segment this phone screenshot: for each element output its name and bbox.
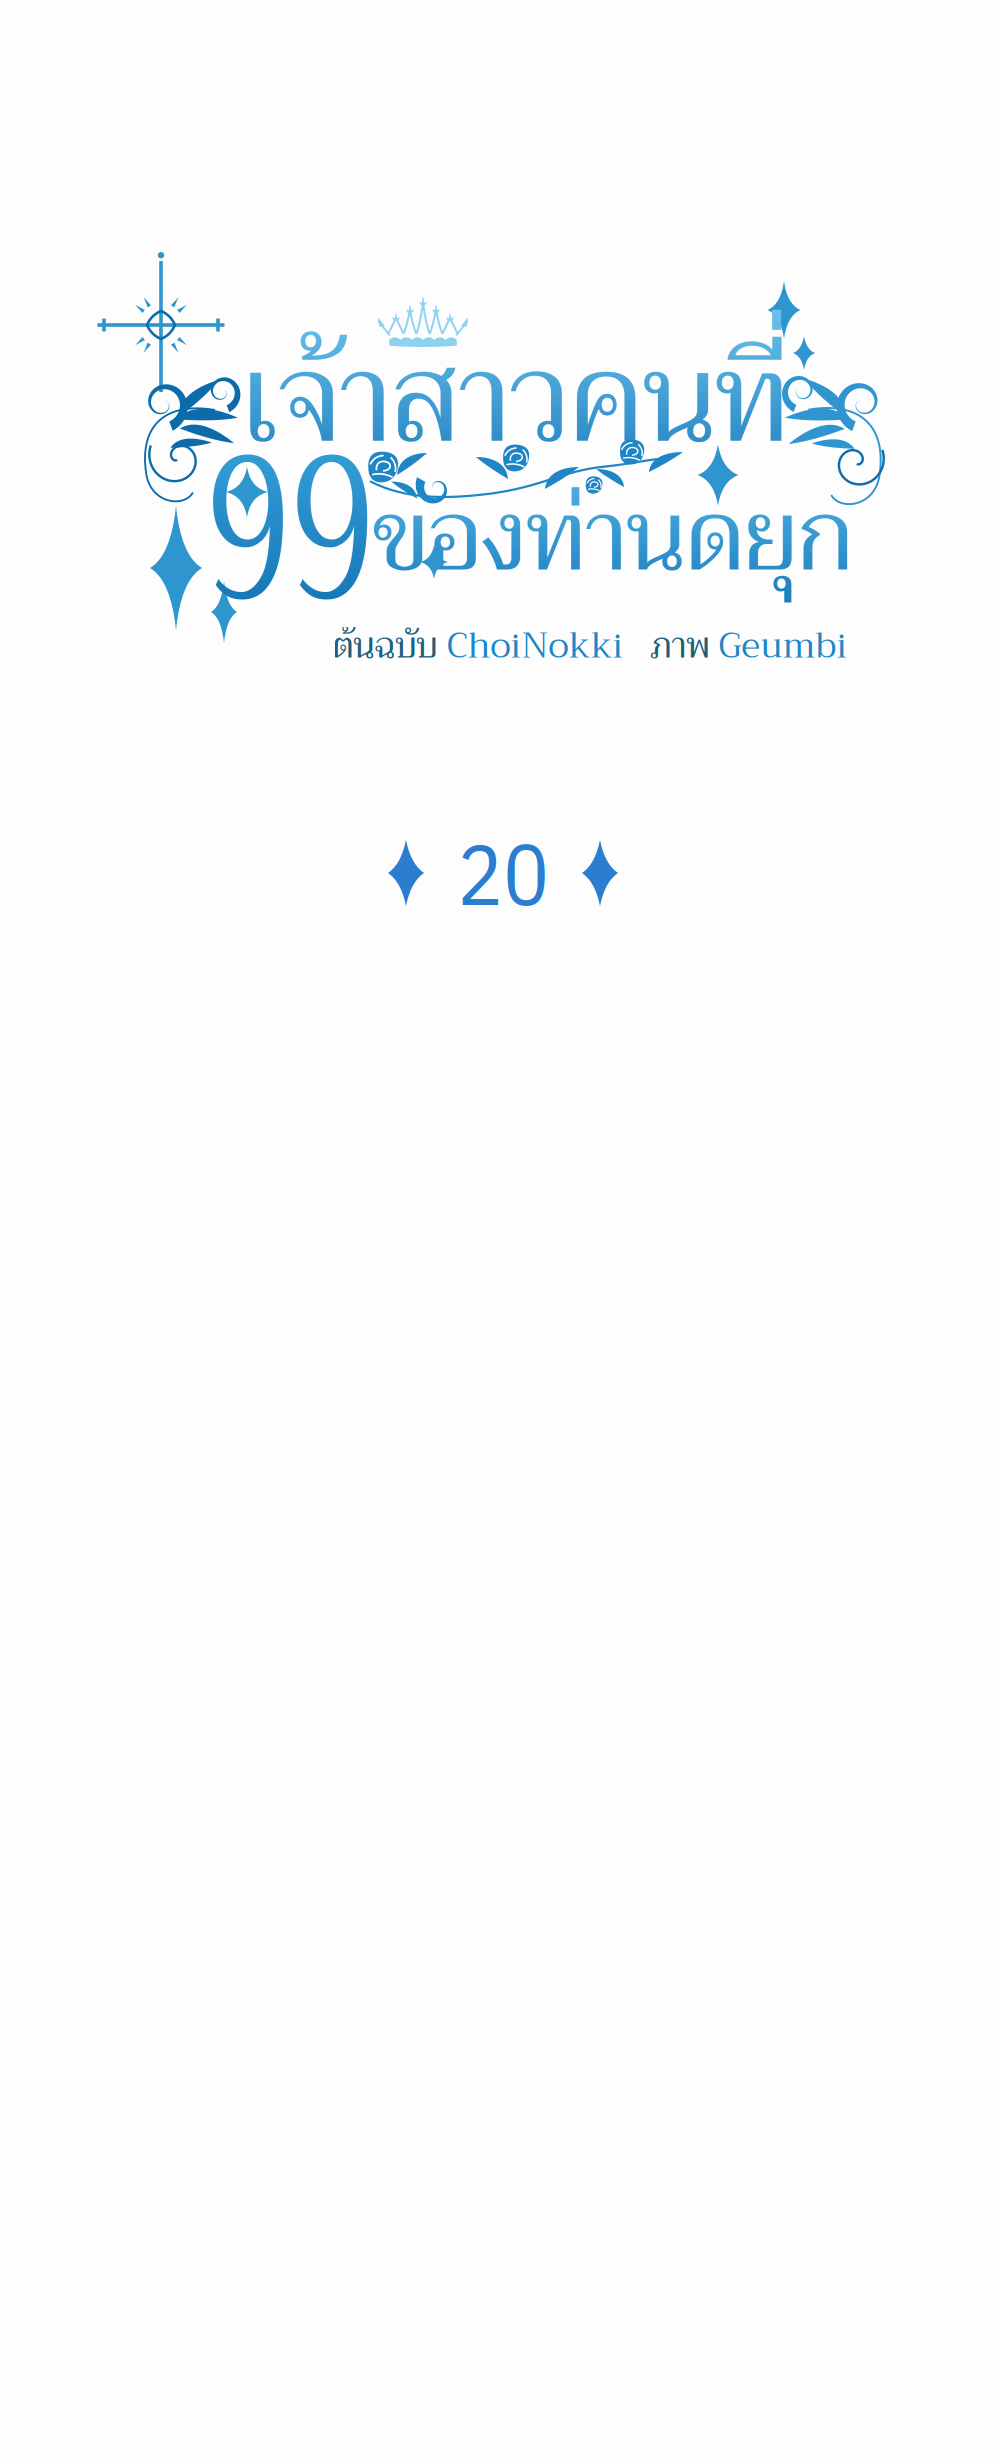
- staticText: 20: [457, 817, 549, 928]
- staticText: ภาพ: [623, 616, 718, 676]
- staticText: ChoiNokki: [446, 616, 623, 676]
- staticText: ต้นฉบับ: [332, 616, 446, 676]
- staticText: Geumbi: [718, 616, 847, 676]
